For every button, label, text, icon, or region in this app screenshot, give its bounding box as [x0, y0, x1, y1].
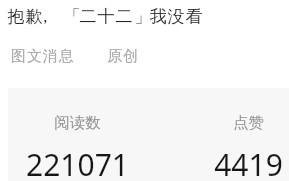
staticText: 221071	[26, 144, 129, 181]
staticText: 点赞	[233, 113, 264, 133]
staticText: 「	[63, 6, 81, 27]
staticText: 4419	[214, 144, 283, 181]
staticText: ，	[36, 6, 54, 27]
staticText: 二十二	[79, 6, 133, 27]
staticText: 」	[134, 6, 152, 27]
button[interactable]: 点赞	[178, 88, 289, 181]
staticText: 我没看	[149, 6, 203, 27]
button[interactable]: 原创	[107, 47, 139, 66]
staticText: 图文消息	[11, 47, 75, 66]
button[interactable]: 抱歉	[0, 0, 289, 40]
staticText: 抱歉	[7, 6, 43, 27]
button[interactable]: 图文消息	[11, 47, 75, 66]
staticText: 阅读数	[54, 113, 101, 133]
button[interactable]: 阅读数	[7, 88, 147, 181]
staticText: 原创	[107, 47, 139, 66]
